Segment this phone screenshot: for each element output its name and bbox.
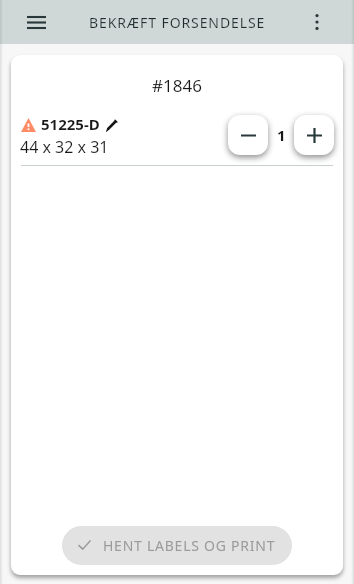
staticText: 44 x 32 x 31 <box>20 136 109 158</box>
staticText: #1846 <box>11 74 343 97</box>
button[interactable]: Edit item <box>101 117 119 135</box>
button[interactable]: Decrease quantity <box>228 115 268 155</box>
staticText: 1 <box>277 125 286 145</box>
button[interactable]: More options <box>301 6 333 38</box>
staticText: 51225-D <box>41 114 100 134</box>
button[interactable]: Increase quantity <box>294 115 334 155</box>
button[interactable]: Menu <box>27 6 59 38</box>
staticText: HENT LABELS OG PRINT <box>103 536 276 555</box>
staticText: BEKRÆFT FORSENDELSE <box>89 13 266 32</box>
button[interactable]: HENT LABELS OG PRINT <box>62 526 292 565</box>
